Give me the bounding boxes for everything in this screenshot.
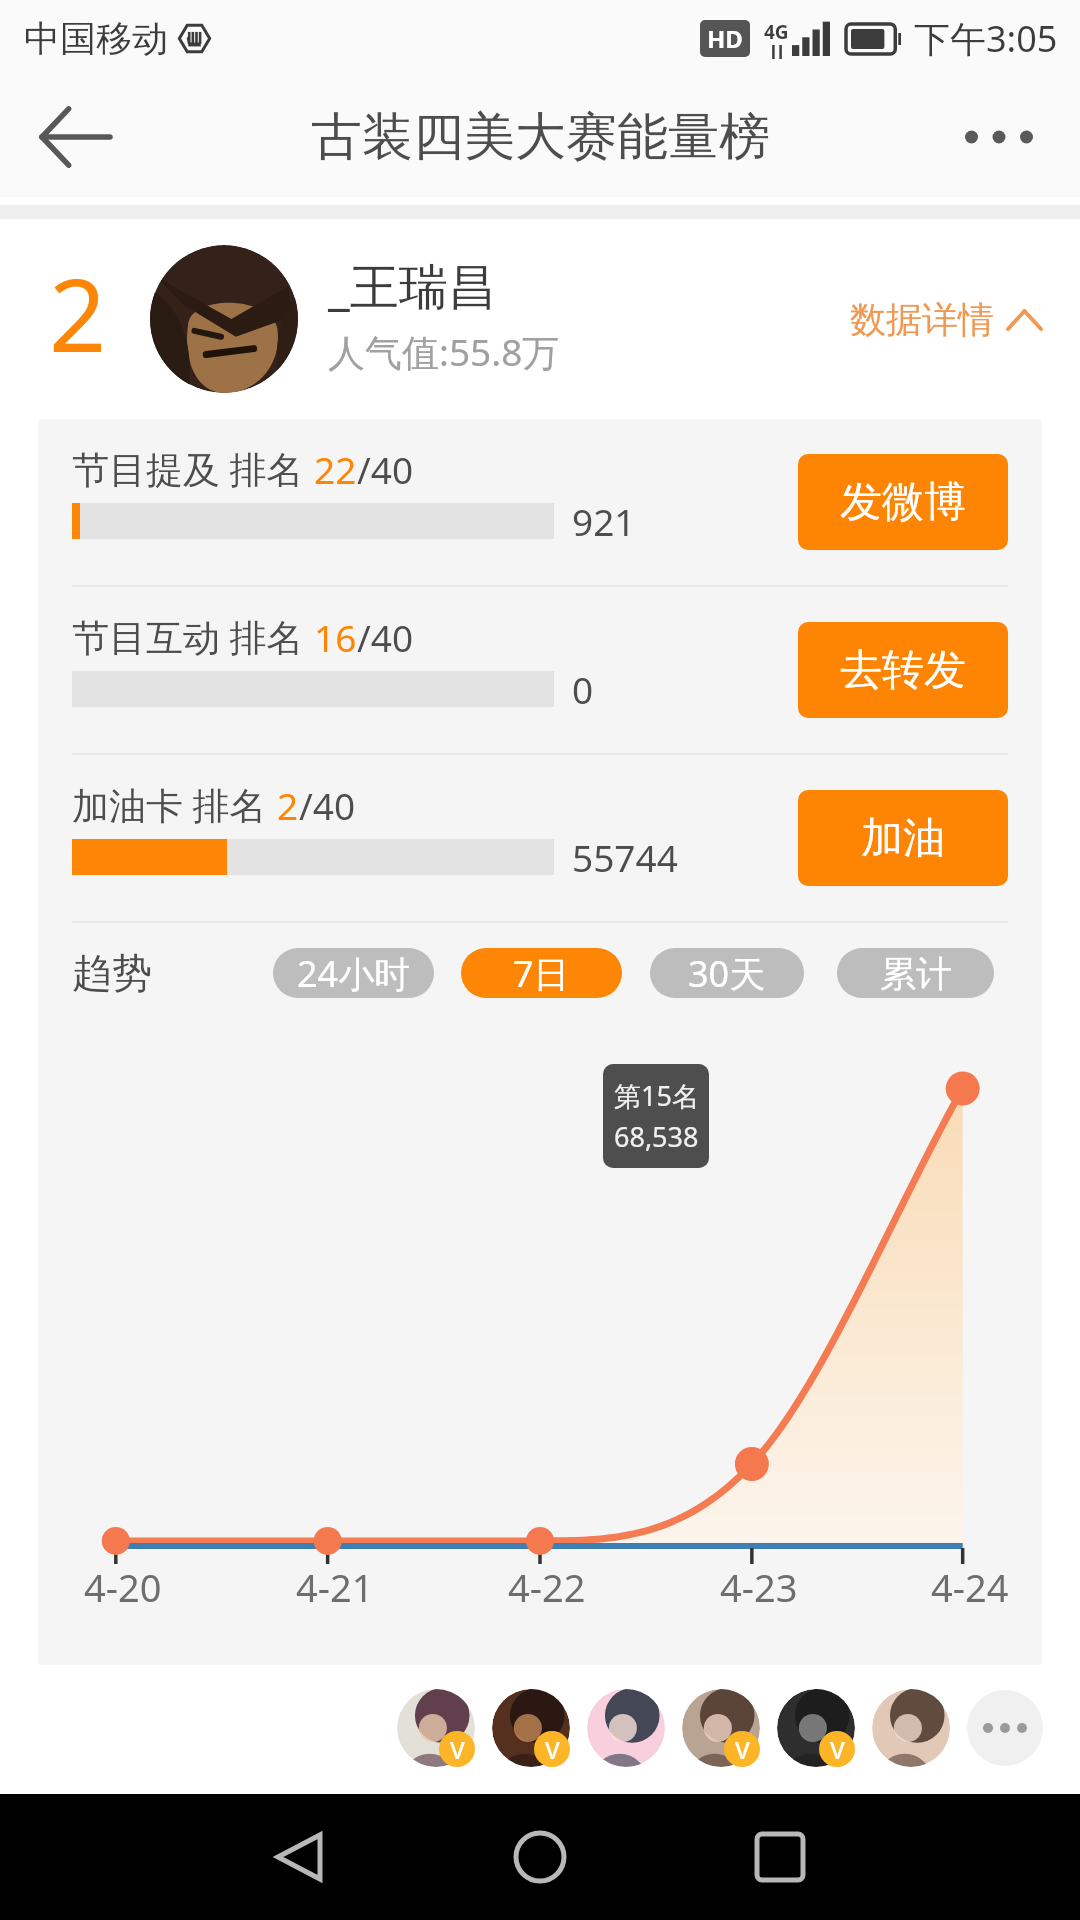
staticText: HD <box>707 22 743 55</box>
staticText: 2 <box>277 780 299 830</box>
staticText: V <box>450 1733 465 1766</box>
button[interactable]: 7日 <box>461 948 622 998</box>
staticText: 7日 <box>513 949 570 998</box>
staticText: 24小时 <box>297 949 411 998</box>
staticText: 30天 <box>688 949 766 998</box>
staticText: 第15名 <box>614 1077 699 1114</box>
button[interactable]: User avatar <box>587 1689 665 1767</box>
button[interactable]: More options <box>949 87 1049 187</box>
button[interactable]: 数据详情 <box>850 297 1042 342</box>
button[interactable]: Back <box>26 87 126 187</box>
staticText: /40 <box>357 444 414 494</box>
button[interactable]: More users <box>967 1690 1043 1766</box>
staticText: 加油 <box>861 812 945 865</box>
staticText: 古装四美大赛能量榜 <box>311 105 770 169</box>
staticText: 2 <box>49 245 107 381</box>
staticText: 数据详情 <box>850 297 994 342</box>
staticText: 16 <box>314 612 357 662</box>
button[interactable]: 累计 <box>837 948 994 998</box>
staticText: 节目互动 排名 <box>72 611 314 662</box>
staticText: _王瑞昌 <box>328 252 497 319</box>
button[interactable]: User avatar <box>397 1689 475 1767</box>
staticText: 55744 <box>572 832 678 882</box>
button[interactable]: User avatar <box>492 1689 570 1767</box>
button[interactable]: User avatar <box>777 1689 855 1767</box>
button[interactable]: Home <box>485 1802 595 1912</box>
staticText: 921 <box>572 496 636 546</box>
button[interactable]: User avatar <box>682 1689 760 1767</box>
staticText: 68,538 <box>614 1118 699 1155</box>
staticText: V <box>545 1733 560 1766</box>
staticText: 4-20 <box>84 1561 162 1613</box>
staticText: 人气值:55.8万 <box>328 326 560 377</box>
staticText: 累计 <box>880 951 952 996</box>
staticText: 4-21 <box>296 1561 374 1613</box>
staticText: 加油卡 排名 <box>72 779 277 830</box>
button[interactable]: User avatar <box>872 1689 950 1767</box>
staticText: /40 <box>299 780 356 830</box>
staticText: 发微博 <box>840 476 966 529</box>
staticText: V <box>830 1733 845 1766</box>
staticText: 4-22 <box>508 1561 586 1613</box>
staticText: 去转发 <box>840 644 966 697</box>
staticText: 22 <box>314 444 357 494</box>
staticText: 4G <box>764 19 789 45</box>
button[interactable]: 30天 <box>650 948 804 998</box>
button[interactable]: 去转发 <box>798 622 1008 718</box>
staticText: 中国移动 <box>24 16 168 61</box>
button[interactable]: 发微博 <box>798 454 1008 550</box>
button[interactable]: Back <box>244 1802 354 1912</box>
button[interactable]: 加油 <box>798 790 1008 886</box>
staticText: 下午3:05 <box>914 14 1058 63</box>
staticText: /40 <box>357 612 414 662</box>
staticText: 趋势 <box>72 948 152 998</box>
staticText: V <box>735 1733 750 1766</box>
staticText: 4-24 <box>931 1561 1009 1613</box>
button[interactable]: 24小时 <box>273 948 434 998</box>
staticText: 节目提及 排名 <box>72 443 314 494</box>
staticText: 4-23 <box>720 1561 798 1613</box>
staticText: 0 <box>572 664 594 714</box>
button[interactable]: Recents <box>725 1802 835 1912</box>
